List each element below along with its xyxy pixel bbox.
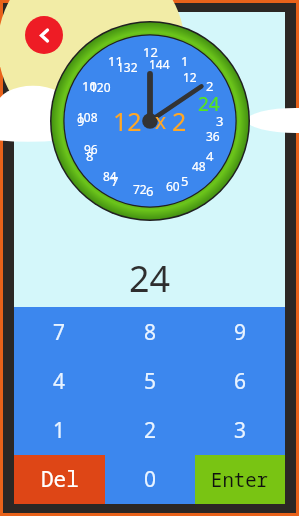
staticText: 48 (192, 158, 206, 174)
button[interactable]: 4 (14, 357, 105, 406)
button[interactable]: 3 (195, 406, 285, 455)
staticText: 4 (53, 367, 66, 396)
button[interactable]: 8 (105, 307, 195, 357)
button[interactable]: 2 (105, 406, 195, 455)
staticText: 108 (77, 109, 98, 125)
staticText: 8 (86, 147, 94, 165)
button[interactable]: 7 (14, 307, 105, 357)
staticText: 8 (144, 318, 157, 347)
button[interactable]: 0 (105, 455, 195, 504)
staticText: 10 (82, 77, 97, 95)
staticText: 60 (166, 178, 180, 194)
staticText: Del (41, 465, 79, 494)
staticText: 24 (198, 91, 220, 117)
staticText: 72 (133, 181, 147, 197)
staticText: Enter (211, 467, 269, 493)
button[interactable]: 9 (195, 307, 285, 357)
staticText: x (155, 107, 167, 136)
staticText: 120 (90, 79, 111, 95)
staticText: 84 (103, 168, 117, 184)
staticText: 36 (206, 128, 220, 144)
staticText: 12 (183, 69, 197, 85)
staticText: 132 (117, 59, 138, 75)
staticText: 6 (234, 367, 247, 396)
staticText: 3 (234, 416, 247, 445)
staticText: 12 (113, 104, 142, 138)
staticText: 12 (143, 43, 158, 61)
staticText: 144 (149, 56, 170, 72)
staticText: 2 (172, 104, 187, 138)
staticText: 7 (53, 318, 66, 347)
staticText: 4 (206, 147, 214, 165)
staticText: 9 (77, 112, 85, 130)
staticText: 1 (181, 52, 189, 70)
staticText: 7 (111, 172, 119, 190)
staticText: 1 (53, 416, 66, 445)
button[interactable]: Back (25, 16, 63, 54)
button[interactable]: Enter (195, 455, 285, 504)
staticText: 3 (216, 112, 224, 130)
button[interactable]: 6 (195, 357, 285, 406)
staticText: 96 (84, 141, 98, 157)
staticText: 5 (181, 172, 189, 190)
staticText: 9 (234, 318, 247, 347)
staticText: 2 (206, 77, 214, 95)
button[interactable]: 1 (14, 406, 105, 455)
staticText: 6 (146, 182, 154, 200)
staticText: 11 (108, 52, 123, 70)
staticText: 5 (144, 367, 157, 396)
staticText: 2 (144, 416, 157, 445)
button[interactable]: Del (14, 455, 105, 504)
staticText: 0 (144, 465, 157, 494)
staticText: 24 (129, 254, 171, 303)
button[interactable]: 5 (105, 357, 195, 406)
